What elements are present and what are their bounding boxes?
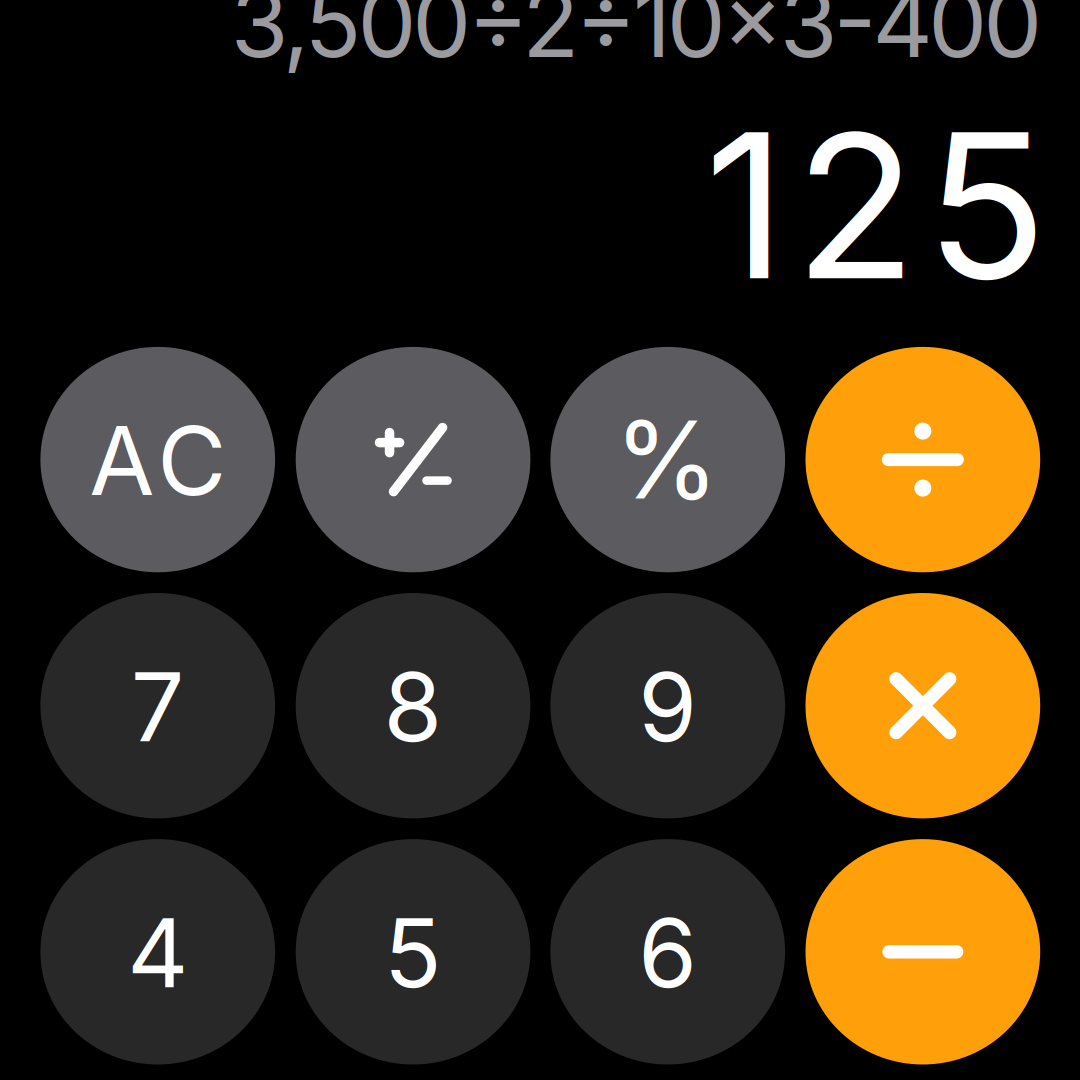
button[interactable]: 6	[550, 839, 785, 1064]
button[interactable]: Toggle sign	[296, 347, 530, 572]
staticText: 5	[384, 895, 442, 1010]
button[interactable]: Divide	[805, 347, 1040, 572]
button[interactable]: 9	[550, 593, 785, 818]
button[interactable]: 8	[296, 593, 530, 818]
staticText: 4	[127, 895, 188, 1010]
button[interactable]: Multiply	[805, 593, 1040, 818]
button[interactable]: %	[550, 347, 785, 572]
button[interactable]: 5	[296, 839, 530, 1064]
button[interactable]: 7	[40, 593, 275, 818]
staticText: %	[614, 395, 719, 524]
button[interactable]: 4	[40, 839, 275, 1064]
staticText: AC	[89, 403, 226, 518]
staticText: 125	[704, 84, 1047, 326]
staticText: 3,500÷2÷10×3-400	[231, 0, 1042, 79]
button[interactable]: AC	[40, 347, 275, 572]
staticText: 7	[131, 649, 185, 764]
button[interactable]: Subtract	[805, 839, 1040, 1064]
staticText: 9	[638, 649, 697, 764]
staticText: 6	[638, 895, 697, 1010]
staticText: 8	[384, 649, 443, 764]
